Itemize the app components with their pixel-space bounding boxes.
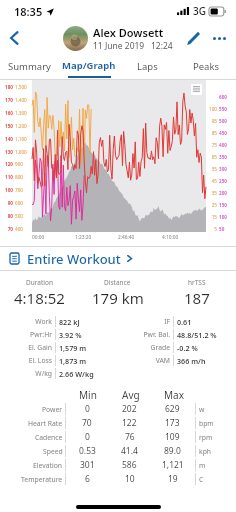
staticText: 80 [0,213,13,219]
staticText: 89.0 [164,445,181,457]
staticText: 1,200 [15,123,27,129]
staticText: -0.2 % [177,343,236,353]
button[interactable]: Back [0,23,30,53]
staticText: 2:46:40 [118,234,135,241]
staticText: 90 [0,200,13,206]
staticText: VAM [118,356,170,365]
staticText: Pwr. Bal. [118,330,170,339]
staticText: 200 [219,190,227,196]
staticText: 179 km [92,288,144,308]
staticText: 100 [0,187,13,193]
staticText: 250 [219,178,227,184]
staticText: Power [42,405,63,414]
staticText: 366 m/h [177,356,236,366]
staticText: 600 [219,94,227,100]
staticText: 0 [85,403,90,415]
staticText: 2.66 W/kg [59,369,118,379]
staticText: 12:24 [151,40,173,52]
staticText: 65 [208,154,217,160]
staticText: Temperature [21,475,63,484]
staticText: 00:00 [32,234,45,241]
staticText: 586 [122,459,137,471]
button[interactable]: Chart options [191,84,202,95]
button[interactable]: Laps [118,54,177,79]
staticText: Grade [118,343,170,352]
staticText: Avg [122,388,140,402]
staticText: 70 [0,226,13,232]
staticText: 180 [0,84,13,90]
staticText: Duration [26,278,53,287]
staticText: 170 [0,97,13,103]
staticText: El. Loss [0,356,52,365]
staticText: Cadence [35,433,63,442]
button[interactable]: Map/Graph [59,54,118,79]
staticText: C [199,475,204,484]
staticText: rpm [199,433,213,442]
button[interactable]: Entire Workout [0,247,236,270]
staticText: 0.61 [177,317,236,327]
staticText: 75 [208,142,217,148]
staticText: 76 [125,431,135,443]
staticText: 700 [15,187,23,193]
staticText: 400 [15,226,23,232]
staticText: Max [164,388,184,402]
staticText: Entire Workout [27,250,121,268]
staticText: 41.4 [121,445,138,457]
staticText: Work [0,317,52,326]
staticText: Pwr:Hr [0,330,52,339]
staticText: 6 [85,473,90,485]
button[interactable]: Peaks [177,54,236,79]
staticText: IF [118,317,170,326]
staticText: 450 [219,130,227,136]
staticText: Peaks [193,60,220,73]
button[interactable]: Alex Dowsett [63,25,173,52]
staticText: 550 [219,106,227,112]
staticText: 85 [208,130,217,136]
staticText: 109 [165,431,180,443]
staticText: 100 [219,214,227,220]
staticText: Map/Graph [62,59,116,72]
staticText: 202 [122,403,137,415]
staticText: 48.8/51.2 % [177,330,236,340]
staticText: 822 kJ [59,317,118,327]
staticText: 3G [193,4,206,18]
staticText: 25 [208,202,217,208]
staticText: w [199,405,205,414]
staticText: 350 [219,154,227,160]
staticText: 900 [15,161,23,167]
staticText: Min [79,388,97,402]
staticText: 50 [219,226,225,232]
button[interactable]: Summary [0,54,59,79]
button[interactable]: Edit [180,25,206,51]
staticText: kph [199,447,212,456]
staticText: 1,579 m [59,343,118,353]
staticText: 150 [0,123,13,129]
staticText: 1,500 [15,84,27,90]
staticText: 15 [208,214,217,220]
staticText: Summary [8,60,51,73]
staticText: 1,400 [15,97,27,103]
staticText: 130 [0,149,13,155]
staticText: 11 June 2019 [93,40,145,52]
staticText: 0.53 [79,445,96,457]
staticText: Elevation [33,461,63,470]
staticText: 4:10:00 [162,234,179,241]
button[interactable]: More options [206,25,232,51]
staticText: 400 [219,142,227,148]
staticText: 500 [219,118,227,124]
staticText: 70 [82,417,92,429]
staticText: 150 [219,202,227,208]
staticText: hrTSS [188,278,206,287]
staticText: 122 [122,417,137,429]
staticText: 300 [219,166,227,172]
staticText: 160 [0,110,13,116]
staticText: 500 [15,213,23,219]
staticText: bpm [199,419,214,428]
staticText: W/kg [0,369,52,378]
staticText: 0 [85,431,90,443]
staticText: 35 [208,190,217,196]
staticText: m [199,461,206,470]
staticText: 110 [0,174,13,180]
staticText: 10 [125,473,135,485]
